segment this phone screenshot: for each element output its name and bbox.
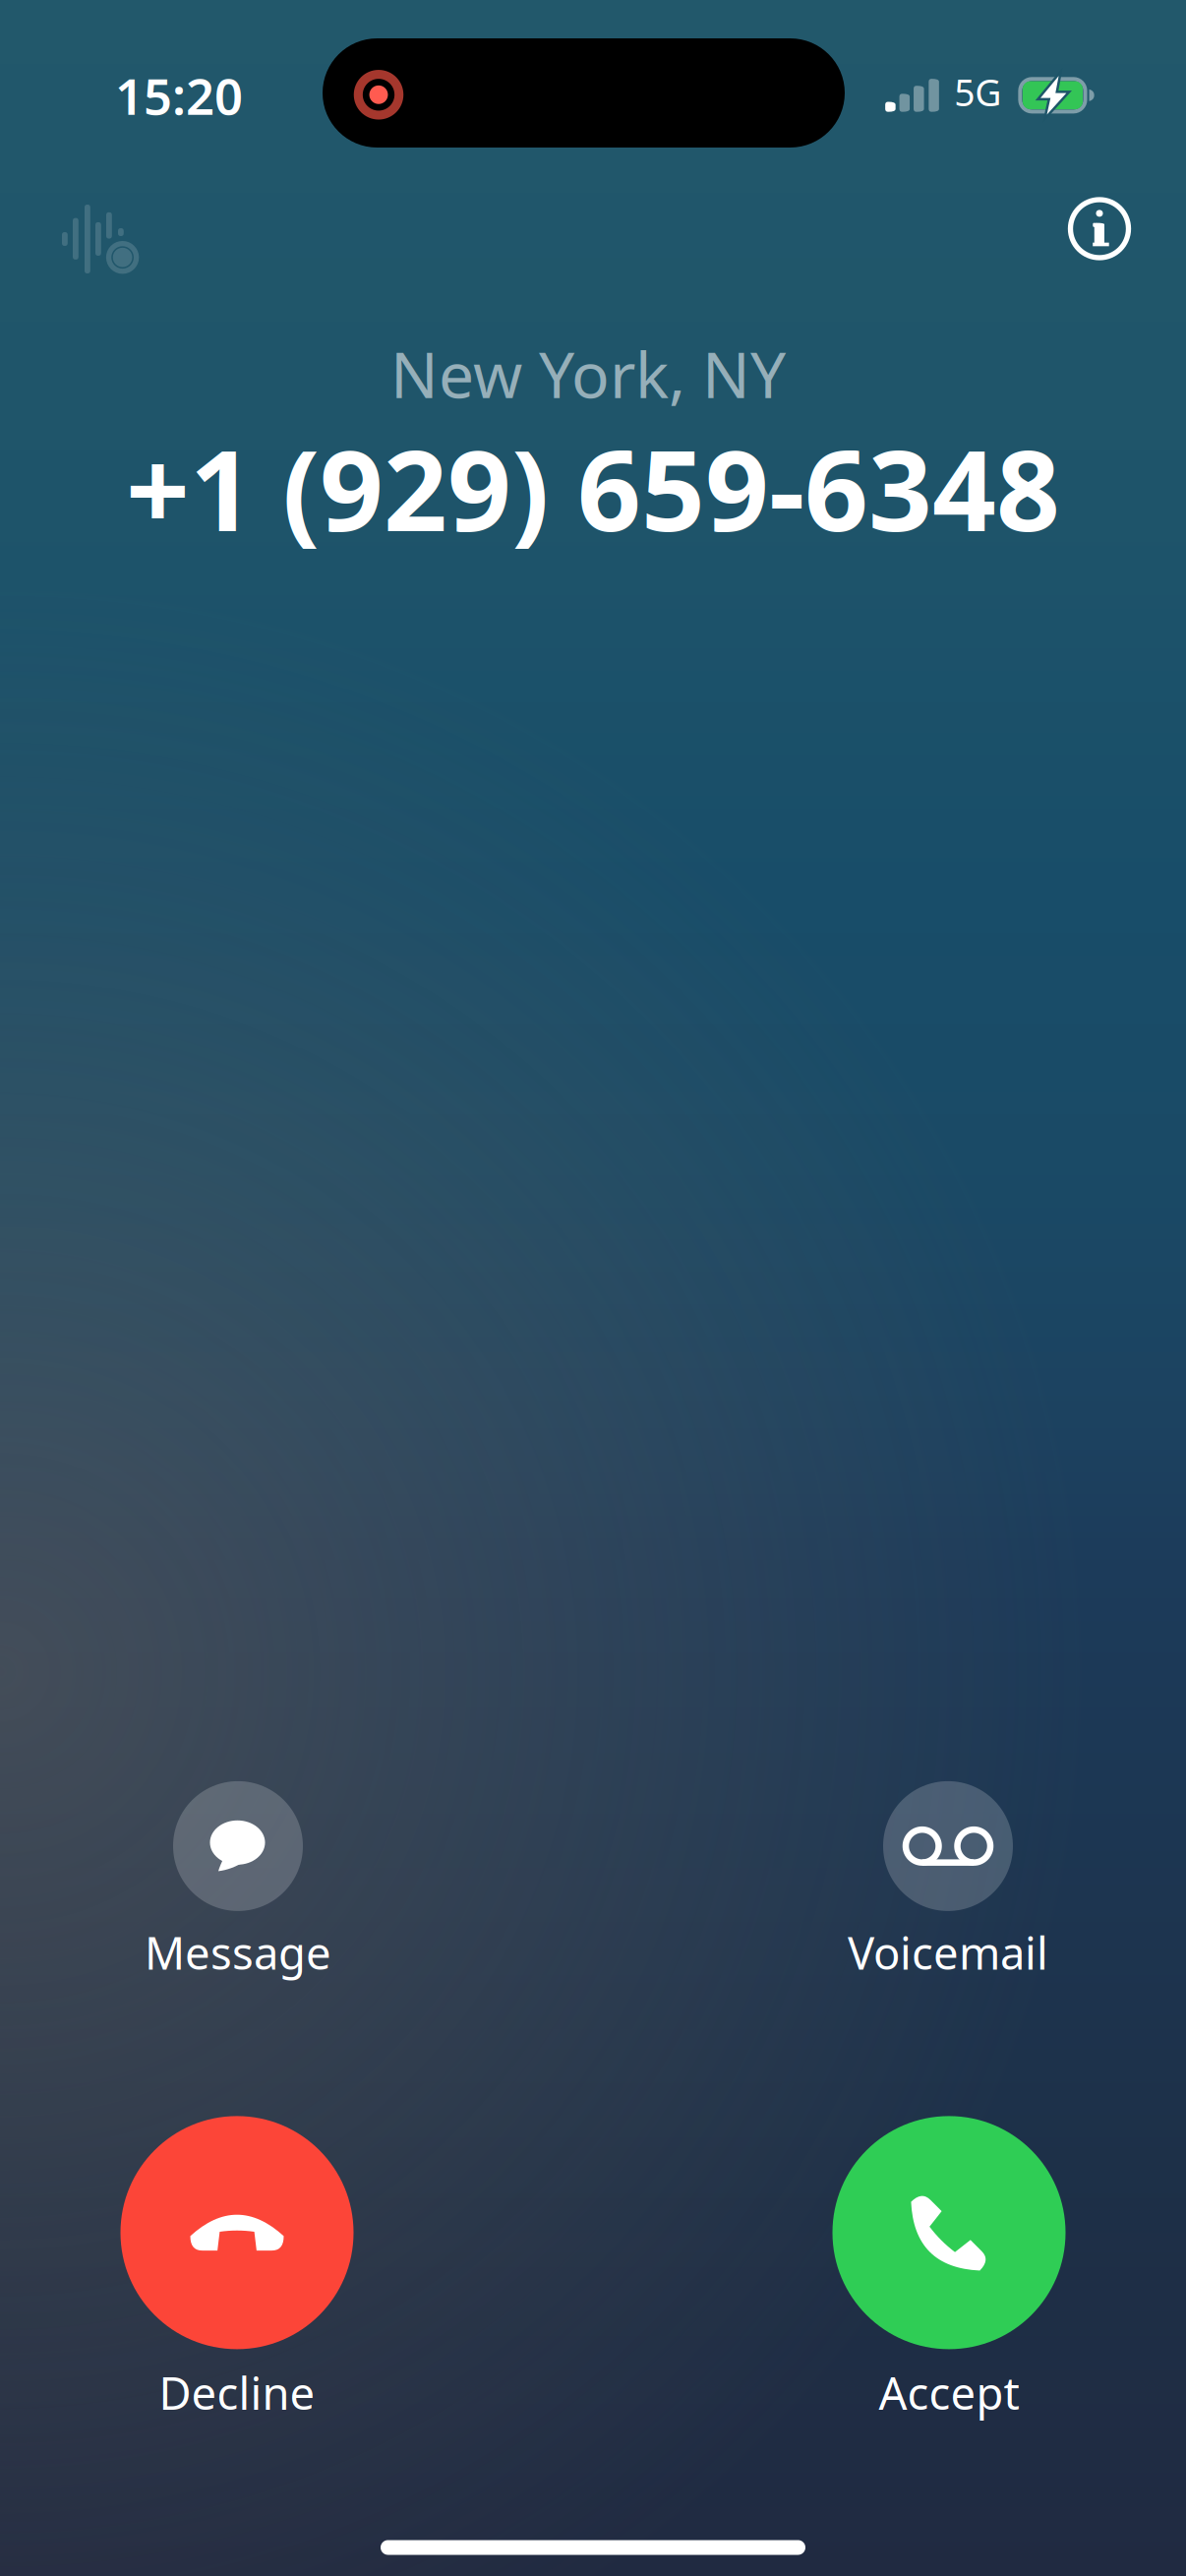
staticText: 5G bbox=[954, 68, 1001, 116]
staticText: Decline bbox=[159, 2363, 315, 2422]
staticText: New York, NY bbox=[390, 332, 786, 416]
button[interactable]: Message bbox=[145, 1781, 331, 1982]
staticText: Voicemail bbox=[848, 1923, 1048, 1982]
staticText: Message bbox=[145, 1923, 331, 1982]
staticText: 15:20 bbox=[115, 62, 243, 129]
button[interactable]: Voicemail bbox=[848, 1781, 1048, 1982]
staticText: +1 (929) 659-6348 bbox=[126, 414, 1060, 562]
button[interactable]: Decline bbox=[120, 2116, 354, 2422]
button[interactable]: Accept bbox=[832, 2116, 1066, 2422]
staticText: Accept bbox=[879, 2363, 1019, 2422]
button[interactable]: Call info bbox=[1058, 187, 1141, 270]
